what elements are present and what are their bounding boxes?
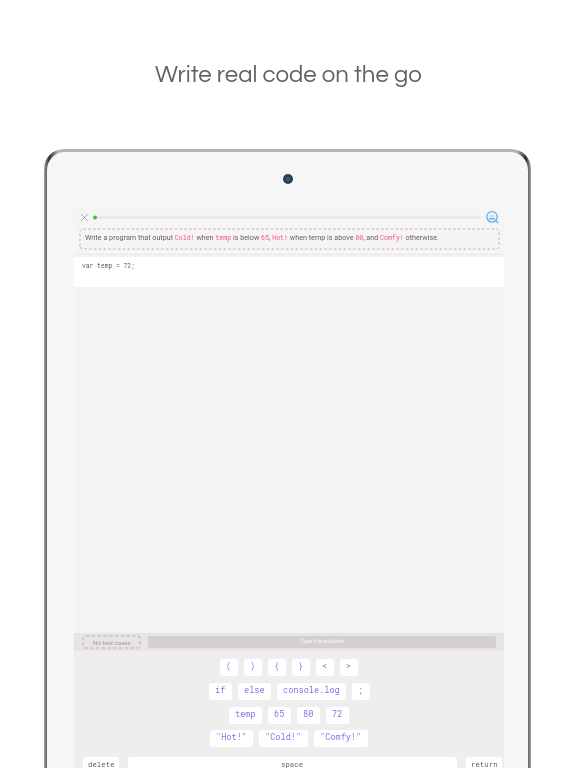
- staticText: return: [471, 759, 498, 768]
- staticText: "Comfy!": [320, 731, 362, 742]
- staticText: >: [346, 660, 352, 671]
- staticText: Type the solution: [300, 638, 345, 645]
- staticText: temp: [235, 708, 256, 719]
- staticText: var temp = 72;: [82, 261, 135, 269]
- button[interactable]: return: [466, 757, 502, 768]
- staticText: {: [274, 660, 280, 671]
- button[interactable]: Feedback: [485, 210, 499, 224]
- button[interactable]: delete: [83, 757, 119, 768]
- staticText: if: [215, 684, 226, 695]
- staticText: "Cold!": [265, 731, 302, 742]
- button[interactable]: ;: [352, 683, 370, 700]
- button[interactable]: console.log: [277, 683, 346, 700]
- staticText: console.log: [283, 684, 340, 695]
- button[interactable]: temp: [229, 707, 262, 724]
- staticText: (: [226, 660, 232, 671]
- button[interactable]: "Hot!": [210, 730, 253, 747]
- staticText: 72: [332, 708, 343, 719]
- button[interactable]: "Comfy!": [314, 730, 368, 747]
- staticText: "Hot!": [216, 731, 247, 742]
- button[interactable]: if: [209, 683, 232, 700]
- button[interactable]: }: [292, 659, 310, 676]
- button[interactable]: {: [268, 659, 286, 676]
- button[interactable]: No test cases: [83, 636, 140, 648]
- staticText: }: [298, 660, 304, 671]
- staticText: space: [281, 759, 304, 768]
- staticText: ;: [358, 684, 364, 695]
- staticText: 65: [274, 708, 285, 719]
- button[interactable]: ): [244, 659, 262, 676]
- button[interactable]: Type the solution: [148, 636, 496, 648]
- button[interactable]: Close: [78, 211, 90, 223]
- button[interactable]: "Cold!": [259, 730, 308, 747]
- button[interactable]: 65: [268, 707, 291, 724]
- button[interactable]: space: [128, 757, 457, 768]
- staticText: delete: [88, 759, 115, 768]
- staticText: 80: [303, 708, 314, 719]
- button[interactable]: Write a program that output Cold! when t…: [80, 229, 499, 249]
- button[interactable]: >: [340, 659, 358, 676]
- staticText: <: [322, 660, 328, 671]
- button[interactable]: 72: [326, 707, 349, 724]
- button[interactable]: 80: [297, 707, 320, 724]
- button[interactable]: <: [316, 659, 334, 676]
- staticText: ): [250, 660, 256, 671]
- button[interactable]: else: [238, 683, 271, 700]
- button[interactable]: (: [220, 659, 238, 676]
- staticText: Write a program that output Cold! when t…: [85, 233, 439, 242]
- staticText: else: [244, 684, 265, 695]
- staticText: Write real code on the go: [155, 62, 422, 87]
- staticText: No test cases: [93, 639, 131, 646]
